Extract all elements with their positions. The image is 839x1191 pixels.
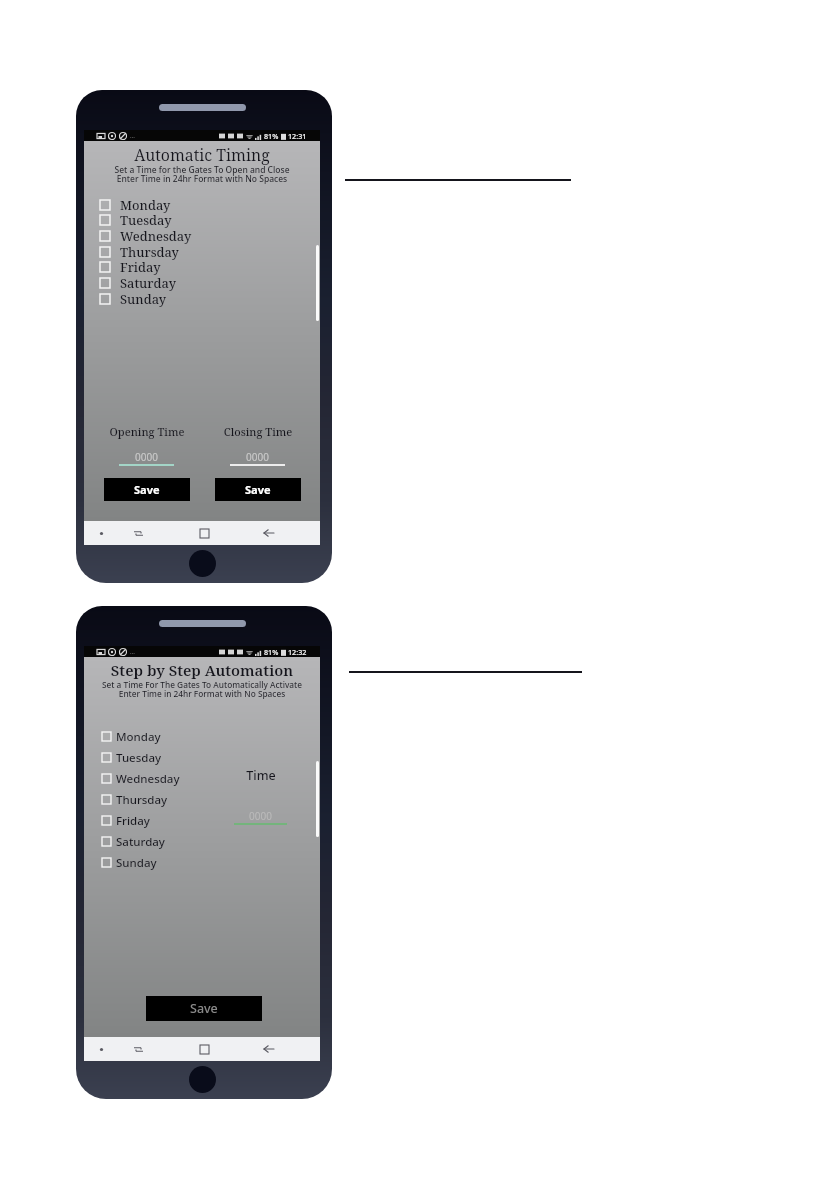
staticText: ... <box>130 132 135 140</box>
button[interactable]: Wednesday <box>100 226 240 245</box>
button[interactable]: Recent apps <box>188 1037 220 1061</box>
staticText: 0000 <box>230 450 285 464</box>
button[interactable]: Switch apps <box>122 1037 154 1061</box>
staticText: Friday <box>116 813 150 829</box>
button[interactable]: Save <box>104 478 190 501</box>
button[interactable]: Time input <box>234 805 287 825</box>
button[interactable]: Closing Time input <box>230 446 285 466</box>
button[interactable]: Saturday <box>100 273 240 292</box>
button[interactable]: Friday <box>102 811 232 830</box>
staticText: Sunday <box>120 290 167 307</box>
button[interactable]: Tuesday <box>102 748 232 767</box>
button[interactable]: Thursday <box>100 242 240 261</box>
button[interactable]: Thursday <box>102 790 232 809</box>
button[interactable]: Save <box>146 996 262 1021</box>
staticText: Monday <box>116 729 161 745</box>
button[interactable]: Sunday <box>102 853 232 872</box>
staticText: Friday <box>120 258 161 275</box>
staticText: Saturday <box>120 274 176 291</box>
staticText: Enter Time in 24hr Format with No Spaces <box>84 688 320 699</box>
staticText: 0000 <box>234 809 287 823</box>
staticText: Automatic Timing <box>84 144 320 166</box>
button[interactable]: Sunday <box>100 289 240 308</box>
button[interactable]: Recent apps <box>188 521 220 545</box>
staticText: 12:31 <box>288 131 307 141</box>
button[interactable]: Friday <box>100 257 240 276</box>
button[interactable]: Save <box>215 478 301 501</box>
staticText: 81% <box>264 131 279 141</box>
staticText: Wednesday <box>120 227 192 244</box>
staticText: Time <box>231 767 291 784</box>
staticText: 12:32 <box>288 647 307 657</box>
staticText: Save <box>190 1000 218 1017</box>
button[interactable]: Back <box>253 1037 285 1061</box>
button[interactable]: Tuesday <box>100 210 240 229</box>
staticText: Save <box>245 482 271 497</box>
staticText: 81% <box>264 647 279 657</box>
staticText: Monday <box>120 196 171 213</box>
staticText: ... <box>130 648 135 656</box>
staticText: Enter Time in 24hr Format with No Spaces <box>84 173 320 185</box>
button[interactable]: Assistant <box>86 521 116 545</box>
staticText: Set a Time for the Gates To Open and Clo… <box>84 164 320 176</box>
staticText: Wednesday <box>116 771 180 787</box>
staticText: Opening Time <box>104 424 190 439</box>
staticText: Thursday <box>116 792 168 808</box>
button[interactable]: Back <box>253 521 285 545</box>
button[interactable]: Saturday <box>102 832 232 851</box>
button[interactable]: Assistant <box>86 1037 116 1061</box>
staticText: 0000 <box>119 450 174 464</box>
button[interactable]: Wednesday <box>102 769 232 788</box>
button[interactable]: Monday <box>102 727 232 746</box>
button[interactable]: Switch apps <box>122 521 154 545</box>
button[interactable]: Monday <box>100 195 240 214</box>
staticText: Set a Time For The Gates To Automaticall… <box>84 679 320 690</box>
staticText: Saturday <box>116 834 165 850</box>
staticText: Tuesday <box>116 750 162 766</box>
staticText: Closing Time <box>215 424 301 439</box>
staticText: Sunday <box>116 855 157 871</box>
button[interactable]: Opening Time input <box>119 446 174 466</box>
staticText: Tuesday <box>120 211 172 228</box>
staticText: Thursday <box>120 243 179 260</box>
staticText: Step by Step Automation <box>84 660 320 680</box>
staticText: Save <box>134 482 160 497</box>
